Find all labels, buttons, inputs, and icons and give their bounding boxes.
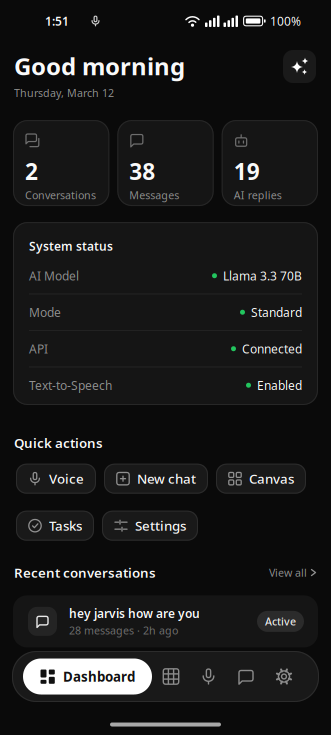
staticText: Quick actions xyxy=(14,434,103,452)
button[interactable]: Apps xyxy=(162,668,179,685)
staticText: 2 xyxy=(25,156,38,186)
staticText: Active xyxy=(265,614,296,628)
button[interactable]: Tasks xyxy=(16,511,94,541)
staticText: API xyxy=(29,341,48,357)
staticText: Voice xyxy=(49,470,84,487)
staticText: System status xyxy=(29,238,113,254)
button[interactable]: Voice xyxy=(16,464,96,494)
staticText: New chat xyxy=(137,470,196,487)
button[interactable]: New chat xyxy=(104,464,208,494)
button[interactable]: hey jarvis how are you xyxy=(13,595,318,647)
staticText: Tasks xyxy=(49,517,82,534)
staticText: Thursday, March 12 xyxy=(14,86,114,100)
staticText: Text-to-Speech xyxy=(29,377,112,393)
staticText: Dashboard xyxy=(63,668,135,685)
button[interactable]: Dashboard xyxy=(23,658,152,694)
button[interactable]: View all xyxy=(269,565,317,580)
button[interactable]: AI assistant xyxy=(283,50,316,83)
staticText: 19 xyxy=(234,156,260,186)
staticText: Messages xyxy=(129,188,179,202)
staticText: AI replies xyxy=(234,188,282,202)
staticText: AI Model xyxy=(29,268,79,284)
staticText: Canvas xyxy=(249,470,294,487)
button[interactable]: Voice xyxy=(200,668,217,685)
staticText: 100% xyxy=(270,13,301,29)
button[interactable]: Settings xyxy=(102,511,198,541)
staticText: Conversations xyxy=(25,188,96,202)
button[interactable]: Settings xyxy=(275,667,293,685)
staticText: Recent conversations xyxy=(14,564,156,581)
staticText: Llama 3.3 70B xyxy=(223,268,302,284)
staticText: hey jarvis how are you xyxy=(69,605,200,621)
staticText: 1:51 xyxy=(45,13,69,29)
staticText: Good morning xyxy=(14,50,185,82)
button[interactable]: Canvas xyxy=(216,464,306,494)
button[interactable]: Chat xyxy=(237,668,254,685)
staticText: Settings xyxy=(135,517,186,534)
staticText: Mode xyxy=(29,304,61,320)
staticText: Enabled xyxy=(257,377,302,393)
staticText: 28 messages · 2h ago xyxy=(69,623,178,637)
staticText: View all xyxy=(269,565,307,580)
staticText: Connected xyxy=(242,341,302,357)
staticText: Standard xyxy=(251,304,302,320)
staticText: 38 xyxy=(129,156,155,186)
